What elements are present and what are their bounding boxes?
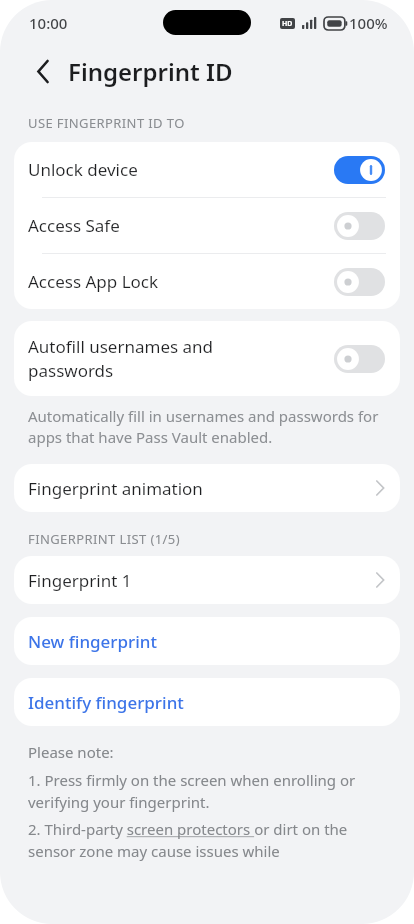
button[interactable]: Fingerprint 1 xyxy=(14,556,400,604)
staticText: Automatically fill in usernames and pass… xyxy=(28,406,388,448)
staticText: HD xyxy=(282,19,293,29)
staticText: Fingerprint 1 xyxy=(28,569,376,592)
button[interactable]: Unlock device xyxy=(14,142,400,197)
staticText: Identify fingerprint xyxy=(28,691,184,714)
staticText: USE FINGERPRINT ID TO xyxy=(28,114,185,132)
staticText: FINGERPRINT LIST (1/5) xyxy=(28,530,180,548)
staticText: Access App Lock xyxy=(28,270,334,293)
button[interactable]: Identify fingerprint xyxy=(14,678,400,726)
staticText: Unlock device xyxy=(28,158,334,181)
button[interactable]: Access Safe xyxy=(14,198,400,253)
staticText: Please note: xyxy=(28,742,114,762)
staticText: New fingerprint xyxy=(28,630,158,653)
button[interactable]: Fingerprint animation xyxy=(14,464,400,512)
button[interactable]: Access App Lock xyxy=(14,254,400,309)
button[interactable]: Autofill usernames and passwords xyxy=(14,321,400,396)
staticText: Fingerprint animation xyxy=(28,477,376,500)
staticText: 2. Third-party screen protectors or dirt… xyxy=(28,819,388,862)
button[interactable]: Back xyxy=(26,54,60,88)
staticText: 10:00 xyxy=(29,13,68,33)
staticText: Autofill usernames and passwords xyxy=(28,335,294,382)
staticText: Access Safe xyxy=(28,214,334,237)
staticText: 100% xyxy=(349,13,388,33)
button[interactable]: New fingerprint xyxy=(14,617,400,665)
staticText: Fingerprint ID xyxy=(68,55,233,88)
staticText: 1. Press firmly on the screen when enrol… xyxy=(28,770,388,813)
